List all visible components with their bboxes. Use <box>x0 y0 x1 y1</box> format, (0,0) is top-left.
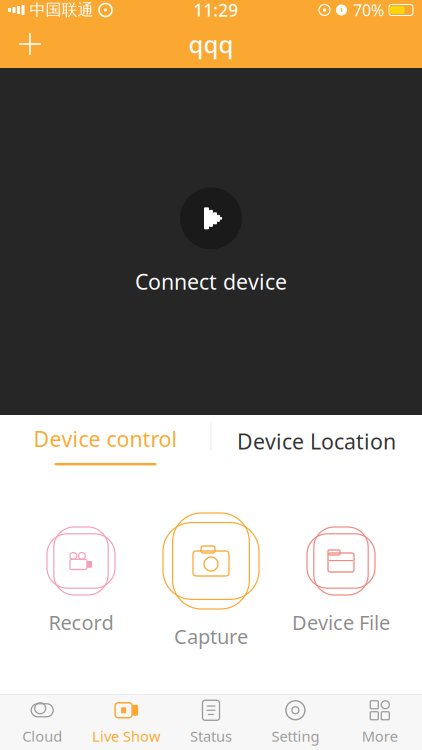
staticText: 中国联通 <box>29 0 93 20</box>
staticText: Device control <box>33 425 177 453</box>
staticText: Setting <box>271 726 319 746</box>
button[interactable]: Live Show <box>84 695 169 750</box>
staticText: Cloud <box>22 726 62 746</box>
staticText: Status <box>190 726 232 746</box>
button[interactable]: Setting <box>253 695 338 750</box>
staticText: Live Show <box>92 726 161 746</box>
staticText: qqq <box>188 28 233 60</box>
staticText: Record <box>48 609 113 636</box>
staticText: Capture <box>174 623 248 650</box>
staticText: 70% <box>353 0 384 21</box>
button[interactable]: Device Location <box>211 415 422 471</box>
staticText: 11:29 <box>193 0 238 21</box>
staticText: More <box>362 726 398 746</box>
button[interactable]: Cloud <box>0 695 84 750</box>
button[interactable]: Record <box>16 527 146 636</box>
button[interactable]: Device control <box>0 415 211 471</box>
staticText: Device Location <box>237 427 396 455</box>
button[interactable]: Status <box>169 695 253 750</box>
staticText: Device File <box>292 609 390 636</box>
staticText: Connect device <box>135 267 287 296</box>
button[interactable]: Device File <box>276 527 406 636</box>
button[interactable]: More <box>338 695 422 750</box>
button[interactable]: Add device <box>8 22 52 66</box>
button[interactable]: Capture <box>146 513 276 650</box>
button[interactable]: Connect device <box>135 187 287 296</box>
